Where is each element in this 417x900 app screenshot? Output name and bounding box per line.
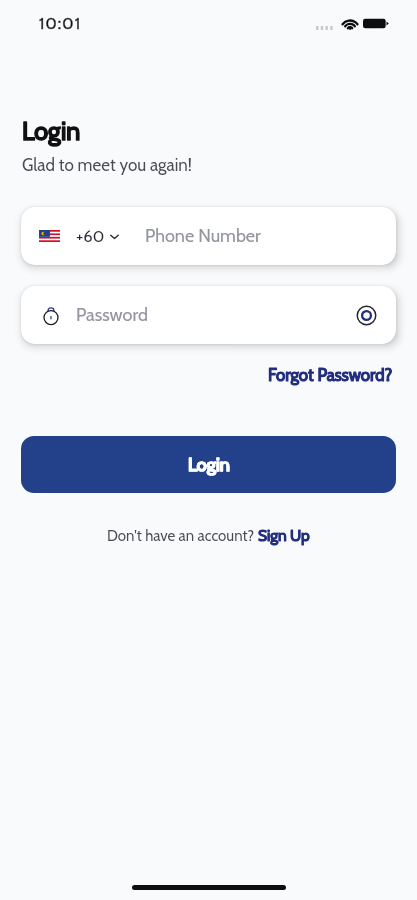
staticText: Forgot Password?	[268, 365, 393, 385]
staticText: Glad to meet you again!	[22, 155, 192, 176]
button[interactable]: Select country code	[34, 220, 124, 252]
button[interactable]: Forgot Password?	[268, 365, 417, 385]
staticText: Sign Up	[258, 526, 310, 545]
staticText: Login	[188, 454, 230, 476]
staticText: Login	[22, 116, 81, 146]
button[interactable]: Show password	[352, 301, 380, 329]
staticText: Sign Up	[258, 526, 310, 545]
staticText: Phone Number	[145, 225, 261, 247]
staticText: Don't have an account?	[107, 527, 258, 545]
button[interactable]: Sign Up	[258, 526, 310, 545]
button[interactable]: Login	[21, 436, 396, 493]
staticText: 10:01	[39, 14, 82, 33]
staticText: 10:01	[39, 14, 82, 33]
staticText: Login	[22, 116, 81, 146]
staticText: +60	[76, 226, 105, 246]
staticText: Password	[76, 304, 148, 326]
staticText: Forgot Password?	[268, 365, 393, 385]
staticText: Login	[188, 454, 230, 476]
